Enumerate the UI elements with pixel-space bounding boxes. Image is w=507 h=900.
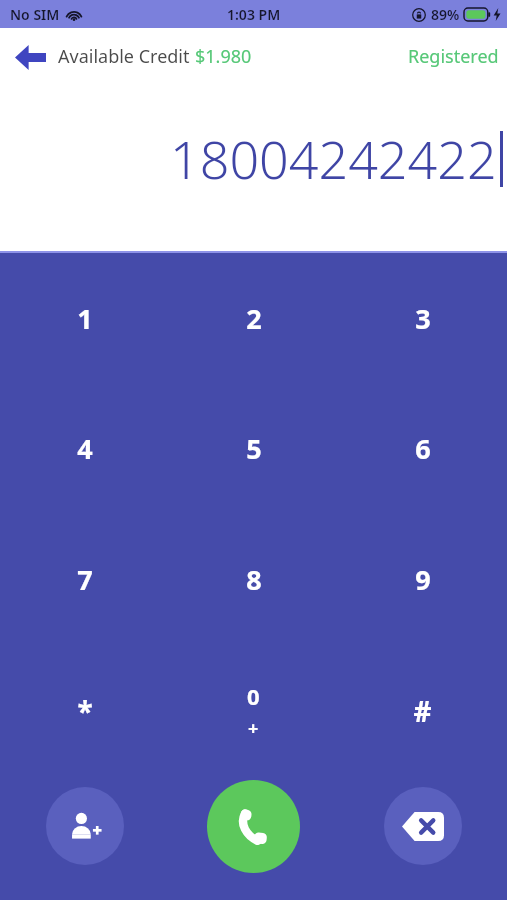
button[interactable]: 7 <box>0 514 169 645</box>
button[interactable]: 8 <box>169 514 338 645</box>
button[interactable]: 3 <box>338 253 507 383</box>
button[interactable]: Call <box>207 780 300 873</box>
button[interactable]: 5 <box>169 383 338 514</box>
staticText: 8 <box>246 561 262 598</box>
staticText: 1 <box>77 300 93 337</box>
button[interactable]: 0 <box>169 645 338 776</box>
button[interactable]: * <box>0 645 169 776</box>
staticText: 1:03 PM <box>227 5 281 24</box>
staticText: Available Credit <box>58 44 195 69</box>
staticText: 5 <box>246 430 262 467</box>
staticText: 2 <box>246 300 262 337</box>
button[interactable]: Registered <box>408 44 507 69</box>
button[interactable]: Available Credit <box>58 44 252 69</box>
button[interactable]: Add contact <box>46 787 124 865</box>
staticText: + <box>248 716 259 741</box>
staticText: # <box>413 692 432 730</box>
staticText: 0 <box>247 681 260 711</box>
staticText: $1.980 <box>195 44 252 69</box>
staticText: No SIM <box>10 5 60 24</box>
button[interactable]: 1 <box>0 253 169 383</box>
button[interactable]: Back <box>6 33 54 81</box>
staticText: * <box>77 692 93 730</box>
staticText: 3 <box>415 300 431 337</box>
staticText: 9 <box>415 561 431 598</box>
staticText: 4 <box>77 430 93 467</box>
button[interactable]: 4 <box>0 383 169 514</box>
button[interactable]: Backspace <box>384 787 462 865</box>
button[interactable]: 9 <box>338 514 507 645</box>
button[interactable]: # <box>338 645 507 776</box>
staticText: 18004242422 <box>170 123 497 194</box>
staticText: 89% <box>431 5 460 24</box>
staticText: 6 <box>415 430 431 467</box>
button[interactable]: 2 <box>169 253 338 383</box>
staticText: 7 <box>77 561 93 598</box>
staticText: Registered <box>408 44 499 69</box>
button[interactable]: 6 <box>338 383 507 514</box>
